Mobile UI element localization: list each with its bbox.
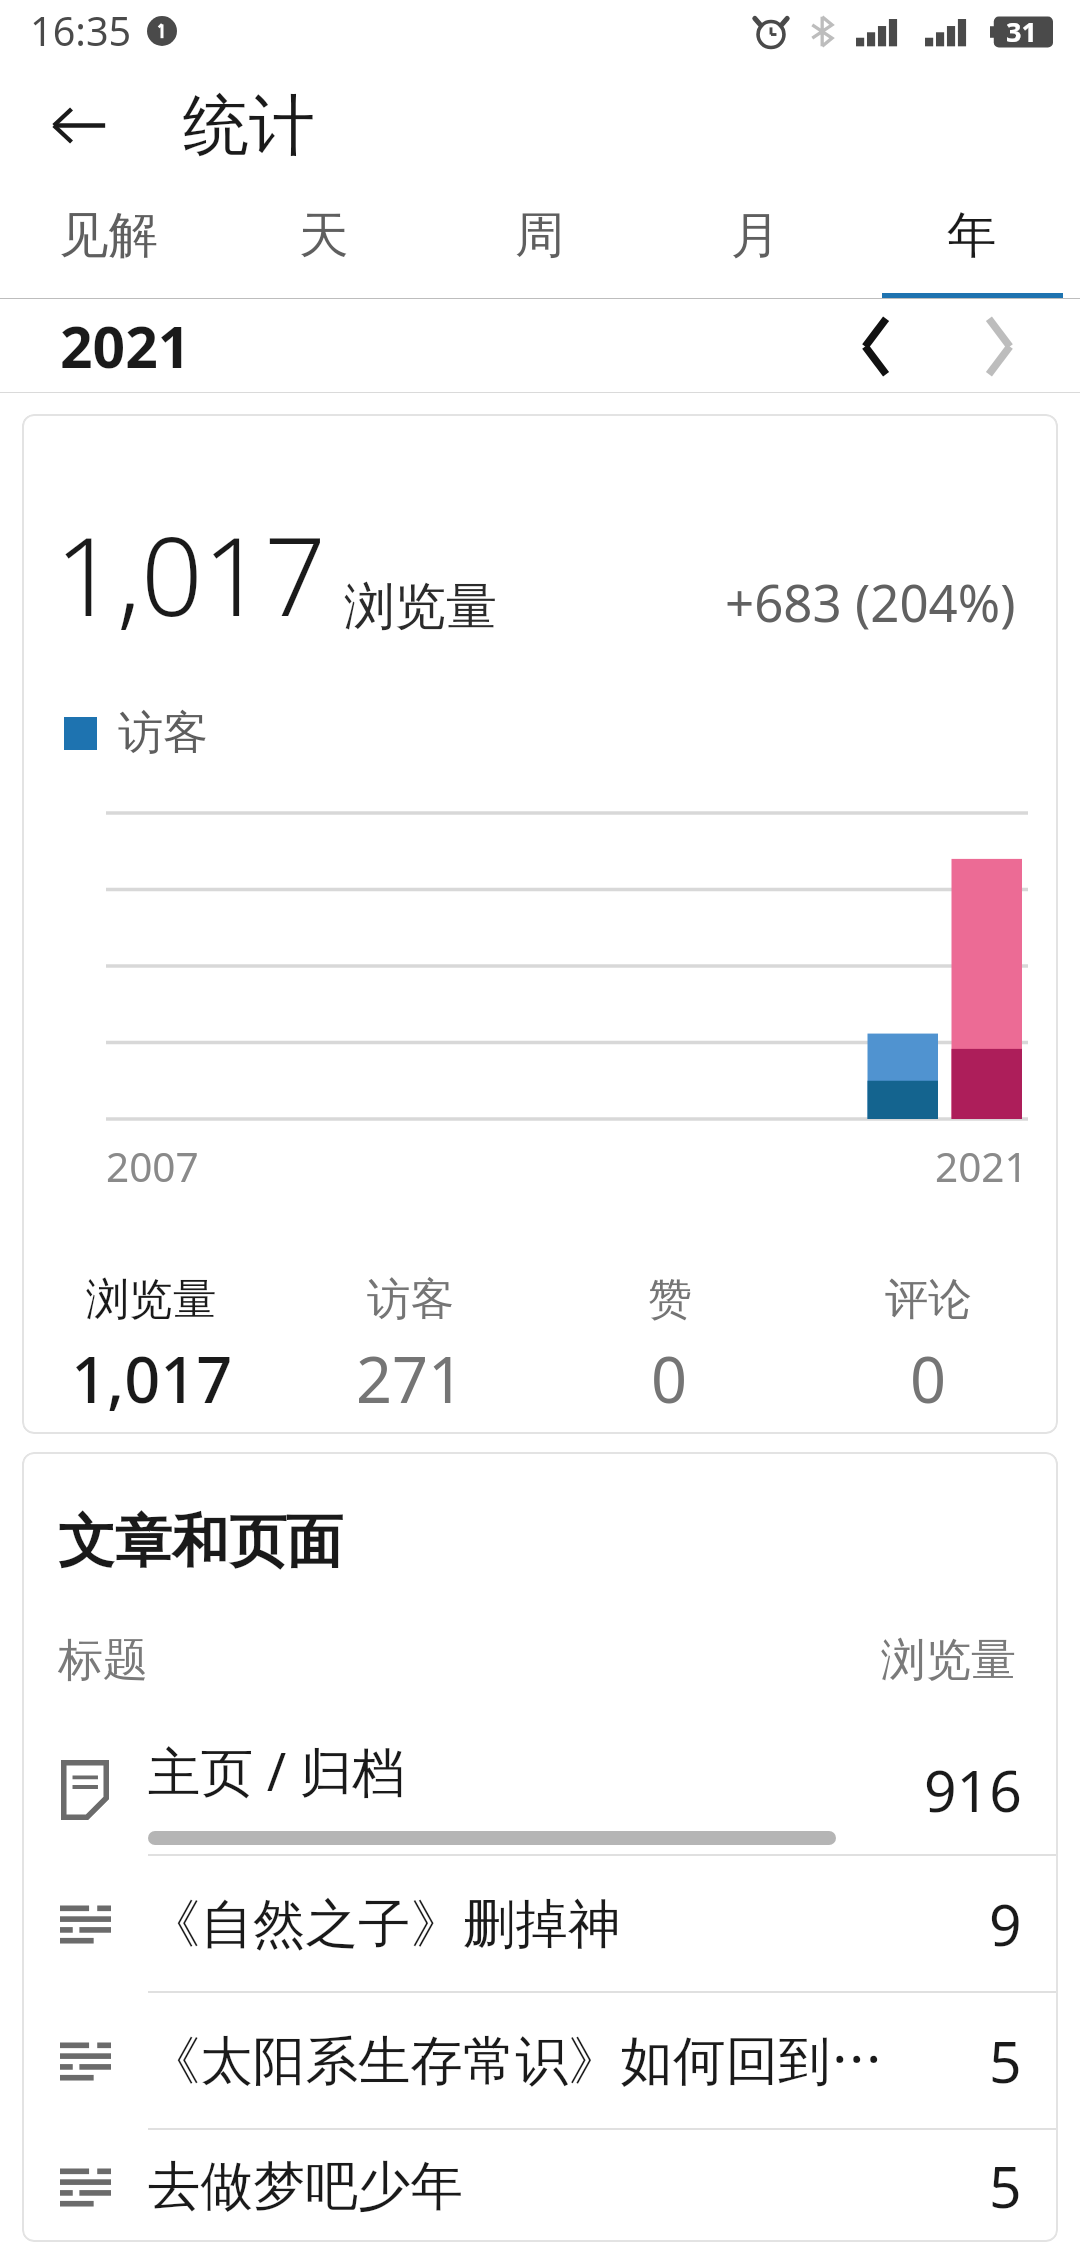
staticText: 年 [947,204,997,266]
staticText: 2021 [935,1139,1028,1194]
button[interactable]: Next year [954,301,1044,391]
staticText: 访客 [367,1272,454,1327]
button[interactable]: 访客 [281,1260,540,1434]
button[interactable]: 见解 [0,188,216,299]
staticText: 见解 [59,204,158,266]
staticText: 《太阳系生存常识》如何回到过去，去… [148,2028,884,2094]
staticText: 浏览量 [86,1272,217,1327]
button[interactable]: 去做梦吧少年 [22,2130,1058,2242]
button[interactable]: 评论 [799,1260,1058,1434]
staticText: +683 (204%) [725,567,1016,636]
staticText: 统计 [183,84,315,167]
staticText: 916 [924,1751,1022,1829]
staticText: 1,017 [71,1336,233,1422]
button[interactable]: Back [30,76,129,175]
staticText: 2007 [106,1139,199,1194]
staticText: 2021 [60,307,191,385]
staticText: 31 [1006,13,1037,50]
staticText: 赞 [648,1272,692,1327]
staticText: 5 [989,2022,1022,2100]
staticText: 0 [910,1336,947,1422]
staticText: 访客 [118,705,208,762]
staticText: 《自然之子》删掉神 [148,1891,621,1957]
staticText: 评论 [885,1272,972,1327]
staticText: 1,017 [55,501,326,648]
staticText: 月 [731,204,781,266]
button[interactable]: 赞 [540,1260,799,1434]
staticText: 271 [356,1336,465,1422]
staticText: 5 [989,2147,1022,2225]
staticText: 0 [651,1336,688,1422]
button[interactable]: 天 [216,188,432,299]
staticText: 文章和页面 [58,1506,343,1578]
staticText: 天 [299,204,349,266]
staticText: 周 [515,204,565,266]
staticText: 9 [989,1885,1022,1963]
button[interactable]: 主页 / 归档 [22,1725,1058,1854]
staticText: 去做梦吧少年 [148,2153,463,2219]
staticText: 16:35 [30,4,132,58]
button[interactable]: 月 [648,188,864,299]
staticText: 浏览量 [881,1632,1016,1689]
staticText: 浏览量 [344,575,497,639]
staticText: 标题 [58,1632,148,1689]
button[interactable]: Previous year [831,301,921,391]
button[interactable]: 年 [864,188,1080,299]
button[interactable]: 浏览量 [22,1260,281,1434]
button[interactable]: 周 [432,188,648,299]
button[interactable]: 《太阳系生存常识》如何回到过去，去… [22,1993,1058,2128]
button[interactable]: 《自然之子》删掉神 [22,1856,1058,1991]
staticText: 主页 / 归档 [148,1735,405,1807]
